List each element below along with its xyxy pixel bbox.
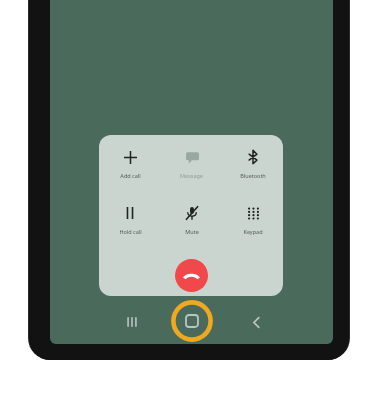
staticText: Add call — [120, 172, 141, 179]
button[interactable]: Back — [234, 300, 278, 344]
button[interactable]: Keypad — [222, 203, 283, 255]
staticText: Hold call — [119, 228, 142, 235]
staticText: Keypad — [243, 228, 263, 235]
button[interactable]: Home — [170, 299, 214, 343]
button[interactable]: End call — [175, 259, 208, 292]
button[interactable]: Add call — [99, 147, 161, 199]
button[interactable]: Recent apps — [110, 300, 154, 344]
button[interactable]: Mute — [161, 203, 222, 255]
staticText: Message — [180, 172, 203, 179]
button[interactable]: Message — [161, 147, 222, 199]
staticText: Mute — [185, 228, 199, 235]
button[interactable]: Hold call — [99, 203, 161, 255]
staticText: Bluetooth — [240, 172, 266, 179]
button[interactable]: Bluetooth — [222, 147, 283, 199]
